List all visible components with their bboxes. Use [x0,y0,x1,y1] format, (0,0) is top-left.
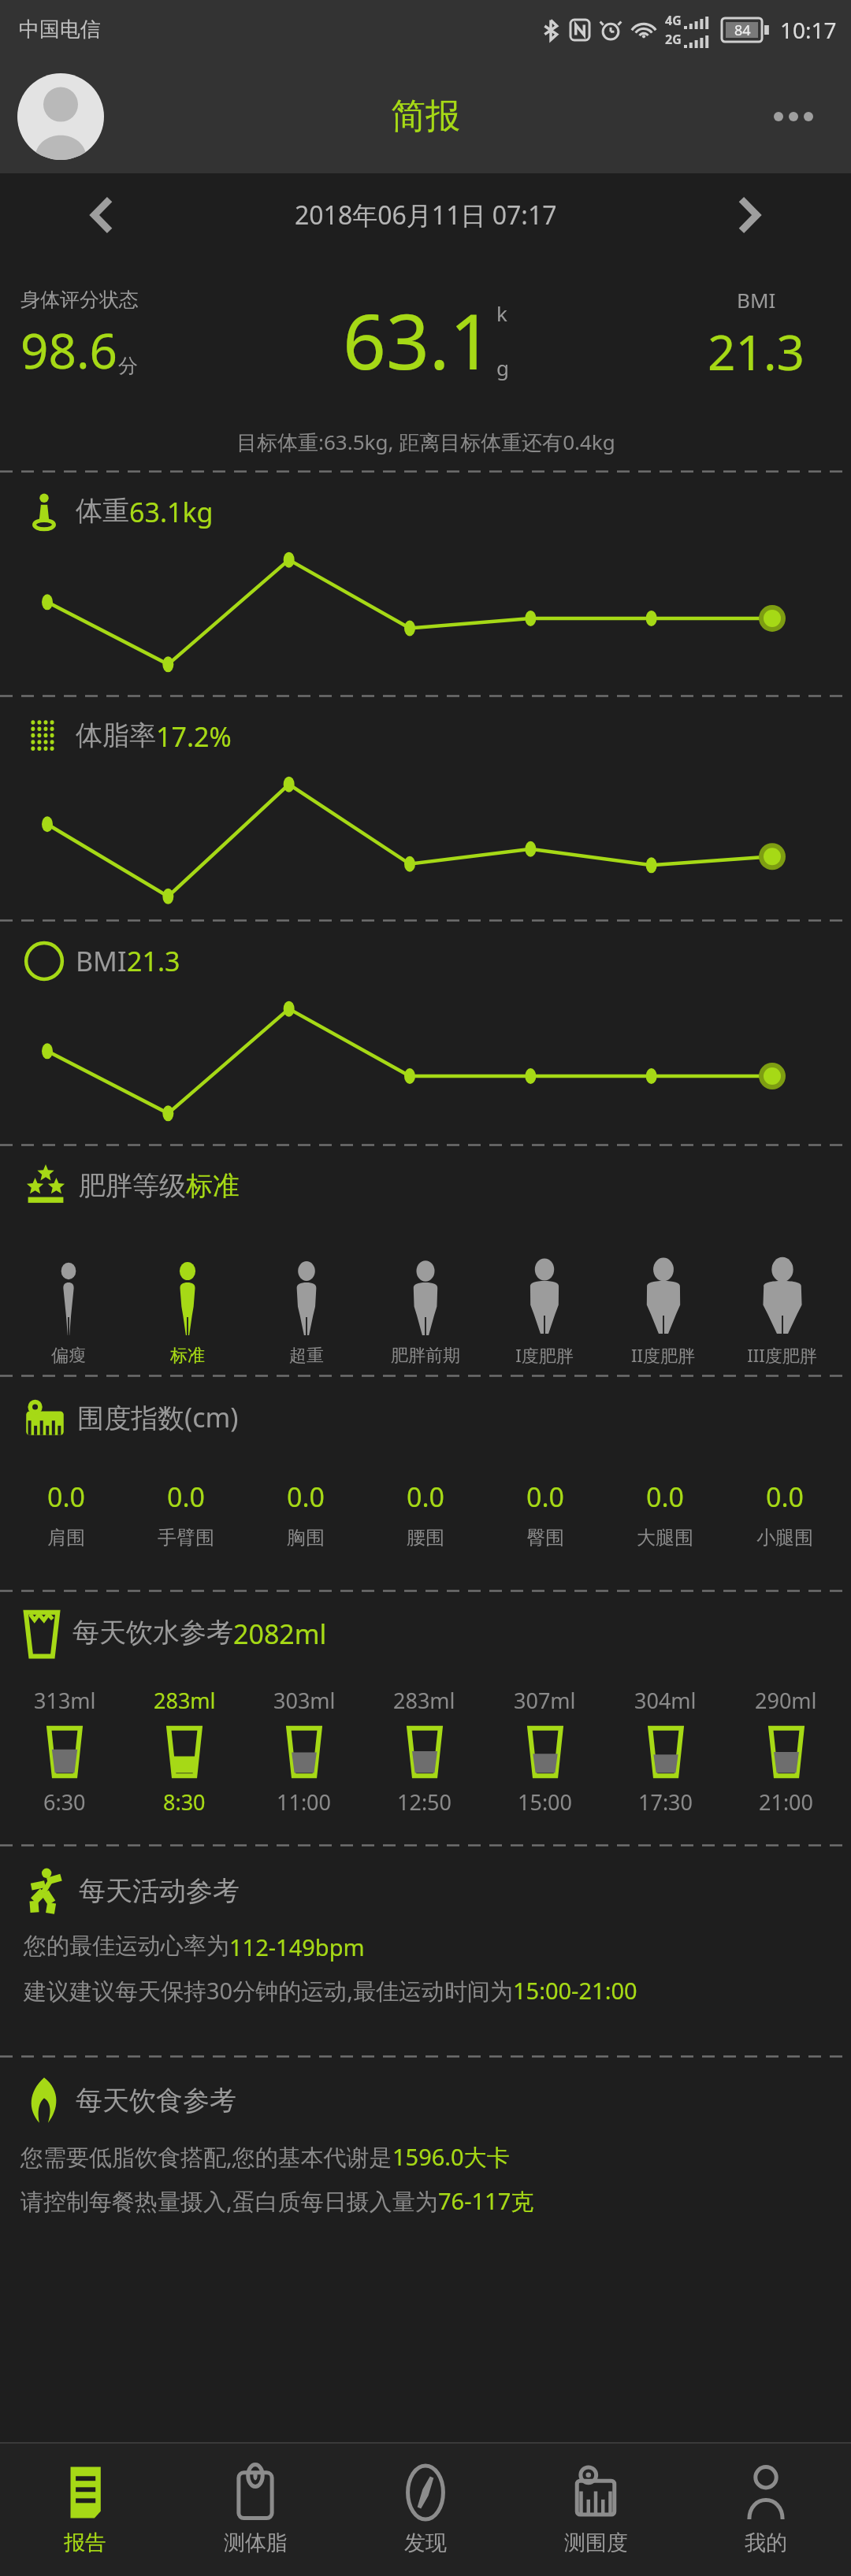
button[interactable]: III度肥胖 [723,1260,842,1367]
button[interactable]: 每天饮水参考 [0,1592,851,1844]
button[interactable]: 每天活动参考 [0,1847,851,2055]
button[interactable]: 0.0 [366,1479,485,1550]
staticText: 76-117克 [438,2185,534,2217]
staticText: 请控制每餐热量摄入,蛋白质每日摄入量为 [20,2185,438,2217]
button[interactable]: Next day [725,191,772,239]
staticText: II度肥胖 [631,1343,695,1367]
button[interactable]: 0.0 [246,1479,366,1550]
button[interactable]: 307ml [485,1686,605,1817]
staticText: 大腿围 [637,1526,693,1550]
staticText: 超重 [289,1345,324,1367]
button[interactable]: 313ml [5,1686,124,1817]
staticText: 304ml [634,1686,697,1715]
staticText: 10:17 [780,15,837,45]
staticText: 21:00 [759,1787,814,1817]
staticText: 围度指数(cm) [77,1399,239,1435]
staticText: 2G [665,31,682,48]
button[interactable]: 我的 [681,2444,851,2576]
staticText: 我的 [745,2530,787,2556]
staticText: BMI [737,286,776,314]
staticText: 11:00 [277,1787,332,1817]
button[interactable]: 围度指数(cm) [0,1377,851,1590]
staticText: 偏瘦 [51,1345,86,1367]
button[interactable]: 发现 [340,2444,511,2576]
button[interactable]: BMI [0,922,851,1144]
staticText: 307ml [514,1686,576,1715]
button[interactable]: 每天饮食参考 [0,2058,851,2255]
staticText: 肥胖等级 [79,1169,186,1203]
staticText: 每天活动参考 [79,1874,240,1908]
staticText: 84 [734,20,751,40]
button[interactable]: 超重 [247,1261,366,1367]
staticText: 98.6 [20,317,118,383]
button[interactable]: 0.0 [6,1479,126,1550]
staticText: 您需要低脂饮食搭配,您的基本代谢是 [20,2141,392,2173]
staticText: 简报 [391,95,460,138]
staticText: 2018年06月11日 07:17 [295,198,557,232]
staticText: 21.3 [708,318,805,384]
staticText: III度肥胖 [747,1343,817,1367]
button[interactable]: 体重 [0,473,851,695]
button[interactable]: 0.0 [725,1479,845,1550]
staticText: 肥胖前期 [391,1345,460,1367]
staticText: 报告 [64,2530,106,2556]
staticText: 63.1kg [129,494,214,530]
staticText: 臀围 [526,1526,564,1550]
button[interactable]: 0.0 [485,1479,605,1550]
button[interactable]: 304ml [605,1686,726,1817]
staticText: 17.2% [156,718,232,755]
staticText: 测围度 [564,2530,628,2556]
staticText: 17:30 [638,1787,693,1817]
button[interactable]: 报告 [0,2444,170,2576]
button[interactable]: 290ml [726,1686,846,1817]
staticText: 6:30 [43,1787,86,1817]
button[interactable]: 测围度 [511,2444,681,2576]
button[interactable]: 0.0 [126,1479,246,1550]
staticText: I度肥胖 [515,1343,574,1367]
button[interactable]: 测体脂 [170,2444,340,2576]
staticText: 分 [118,354,138,378]
staticText: 体脂率 [76,718,156,752]
staticText: 您的最佳运动心率为 [24,1932,229,1961]
staticText: 标准 [186,1169,240,1203]
staticText: 每天饮食参考 [76,2084,236,2118]
button[interactable]: 体脂率 [0,697,851,919]
button[interactable]: 283ml [364,1686,485,1817]
button[interactable]: 标准 [128,1261,247,1367]
staticText: 测体脂 [224,2530,288,2556]
button[interactable]: II度肥胖 [604,1260,723,1367]
staticText: 体重 [76,494,129,528]
staticText: 15:00-21:00 [513,1975,637,2006]
staticText: 每天饮水参考 [72,1616,233,1650]
staticText: 290ml [755,1686,817,1715]
staticText: 肩围 [47,1526,85,1550]
staticText: 建议建议每天保持30分钟的运动,最佳运动时间为 [24,1975,513,2006]
button[interactable]: I度肥胖 [485,1260,604,1367]
staticText: 目标体重:63.5kg, 距离目标体重还有0.4kg [236,428,615,456]
staticText: 2082ml [233,1616,327,1652]
button[interactable]: 肥胖前期 [366,1261,485,1367]
button[interactable]: 肥胖等级 [0,1146,851,1375]
staticText: 21.3 [127,943,180,979]
staticText: 发现 [404,2530,447,2556]
staticText: 283ml [393,1686,455,1715]
button[interactable]: 303ml [244,1686,364,1817]
button[interactable]: More options [764,102,823,131]
button[interactable]: 0.0 [605,1479,725,1550]
staticText: 0.0 [407,1479,445,1515]
button[interactable]: 283ml [124,1686,244,1817]
staticText: g [496,354,509,381]
staticText: 0.0 [47,1479,86,1515]
staticText: k [496,299,507,327]
staticText: 中国电信 [19,17,101,43]
button[interactable]: 偏瘦 [9,1261,128,1367]
staticText: 4G [665,12,682,29]
staticText: 0.0 [646,1479,685,1515]
staticText: 12:50 [397,1787,452,1817]
button[interactable]: Previous day [79,191,126,239]
staticText: 手臂围 [158,1526,214,1550]
button[interactable]: Profile [17,73,104,160]
staticText: 8:30 [163,1787,206,1817]
staticText: 313ml [34,1686,96,1715]
staticText: 0.0 [167,1479,206,1515]
